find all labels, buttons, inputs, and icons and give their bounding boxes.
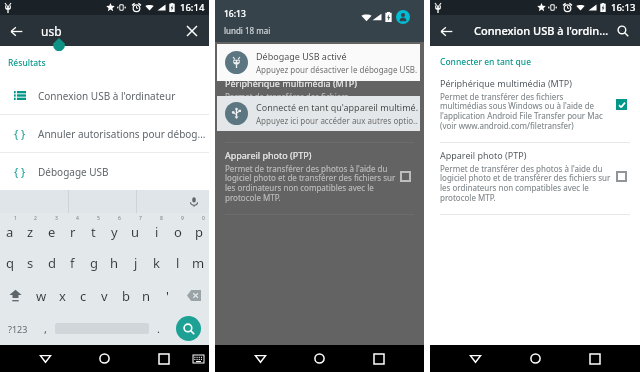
staticText: q [6,254,14,272]
staticText: Appuyez pour désactiver le débogage USB. [256,64,418,75]
button[interactable]: g [83,246,104,279]
staticText: Débogage USB activé [256,50,347,62]
staticText: Périphérique multimédia (MTP) [225,77,357,89]
button[interactable]: Back [32,345,59,372]
staticText: h [110,254,119,272]
button[interactable]: Recents [581,345,608,372]
button[interactable]: b [115,279,136,312]
button[interactable]: Recents [150,345,177,372]
button[interactable]: d [41,246,62,279]
button[interactable]: Hide keyboard [190,351,206,367]
button[interactable]: Search [176,316,201,341]
staticText: Appareil photo (PTP) [440,149,527,161]
button[interactable]: c [73,279,94,312]
button[interactable]: Shift [0,279,31,312]
button[interactable]: Appareil photo (PTP) [215,143,424,214]
staticText: , [44,321,47,336]
button[interactable]: Back [6,21,26,41]
button[interactable]: f [62,246,83,279]
button[interactable]: x [52,279,73,312]
button[interactable]: 0 [188,213,209,246]
staticText: usb [41,23,62,39]
button[interactable]: 9 [167,213,188,246]
button[interactable]: l [167,246,188,279]
button[interactable]: ?123 [0,312,36,345]
button[interactable]: ' [157,279,178,312]
button[interactable]: Back [436,21,456,41]
button[interactable]: 2 [20,213,41,246]
button[interactable]: Appareil photo (PTP) [430,143,640,214]
button[interactable]: Recents [365,345,392,372]
button[interactable]: k [146,246,167,279]
staticText: 2 [34,215,37,222]
button[interactable]: User profile [396,10,410,24]
staticText: Connexion USB à l'ordinateur [38,89,176,103]
button[interactable]: { } [0,115,209,152]
staticText: Permet de transférer des fichiers multim… [440,91,610,132]
staticText: b [122,287,130,305]
button[interactable]: Connecté en tant qu'appareil multimé… [217,96,420,131]
button[interactable]: q [0,246,20,279]
staticText: 16:13 [611,1,636,14]
button[interactable]: 7 [125,213,146,246]
button[interactable]: , [36,312,55,345]
staticText: . [157,321,160,336]
button[interactable]: n [136,279,157,312]
button[interactable]: 8 [146,213,167,246]
staticText: Permet de transférer des fichiers multim… [225,91,395,132]
button[interactable]: Back [247,345,274,372]
button[interactable]: 1 [0,213,20,246]
button[interactable]: 6 [104,213,125,246]
staticText: 9 [181,215,184,222]
staticText: 4 [76,215,79,222]
staticText: x [59,287,66,305]
button[interactable]: j [125,246,146,279]
button[interactable]: Périphérique multimédia (MTP) [430,71,640,142]
staticText: Connexion USB à l'ordin… [474,23,609,38]
button[interactable]: . [149,312,168,345]
staticText: Connecter en tant que [440,56,532,68]
button[interactable]: Voice input [186,194,202,210]
staticText: Appuyez ici pour accéder aux autres opti… [256,115,418,126]
staticText: m [192,254,205,272]
staticText: o [174,223,182,241]
button[interactable]: MTP checkbox checked [400,99,411,110]
button[interactable]: Home [91,345,118,372]
button[interactable]: h [104,246,125,279]
button[interactable]: m [188,246,209,279]
button[interactable]: Delete [178,279,209,312]
button[interactable]: PTP checkbox [400,171,411,182]
button[interactable]: 5 [83,213,104,246]
button[interactable]: 3 [41,213,62,246]
button[interactable]: s [20,246,41,279]
button[interactable]: 4 [62,213,83,246]
staticText: z [27,223,34,241]
button[interactable]: w [31,279,52,312]
staticText: j [134,254,138,272]
staticText: 7 [139,215,142,222]
staticText: c [80,287,87,305]
button[interactable]: Connexion USB à l'ordinateur [0,77,209,114]
button[interactable]: Clear search [182,21,202,41]
staticText: a [6,223,14,241]
staticText: l [176,254,180,272]
staticText: 0 [202,215,205,222]
button[interactable]: Back [462,345,489,372]
staticText: w [36,287,47,305]
button[interactable]: Périphérique multimédia (MTP) [215,71,424,142]
staticText: n [142,287,151,305]
staticText: r [70,223,76,241]
button[interactable]: Home [522,345,549,372]
button[interactable]: Home [306,345,333,372]
button[interactable]: PTP checkbox [616,171,627,182]
staticText: 5 [97,215,100,222]
staticText: Connecter en tant que [225,56,317,68]
button[interactable]: Débogage USB activé [217,44,420,81]
button[interactable]: { } [0,153,209,190]
staticText: lundi 18 mai [224,25,271,36]
staticText: Résultats [8,57,46,69]
button[interactable]: MTP checkbox checked [616,99,627,110]
button[interactable]: Search [613,21,633,41]
button[interactable]: v [94,279,115,312]
